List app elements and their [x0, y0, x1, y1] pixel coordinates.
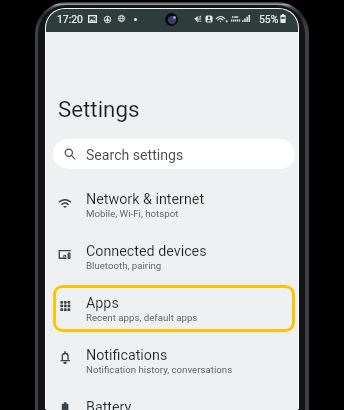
staticText: Network & internet	[86, 191, 205, 208]
button[interactable]: Search settings	[53, 139, 295, 169]
button[interactable]: Battery	[53, 389, 295, 410]
button[interactable]: Notifications	[53, 337, 295, 384]
staticText: Notifications	[86, 347, 168, 364]
staticText: 55%	[259, 13, 279, 25]
button[interactable]: Network & internet	[53, 181, 295, 228]
staticText: 17:20	[57, 13, 83, 25]
staticText: Mobile, Wi-Fi, hotspot	[86, 208, 179, 219]
staticText: Connected devices	[86, 243, 207, 260]
button[interactable]: Connected devices	[53, 233, 295, 280]
staticText: Notification history, conversations	[86, 364, 233, 375]
staticText: Recent apps, default apps	[86, 312, 198, 323]
staticText: Bluetooth, pairing	[86, 260, 162, 271]
staticText: Search settings	[86, 147, 184, 164]
button[interactable]: Apps	[53, 285, 295, 332]
staticText: Battery	[86, 399, 132, 410]
staticText: Apps	[86, 295, 119, 312]
staticText: Settings	[58, 96, 140, 122]
